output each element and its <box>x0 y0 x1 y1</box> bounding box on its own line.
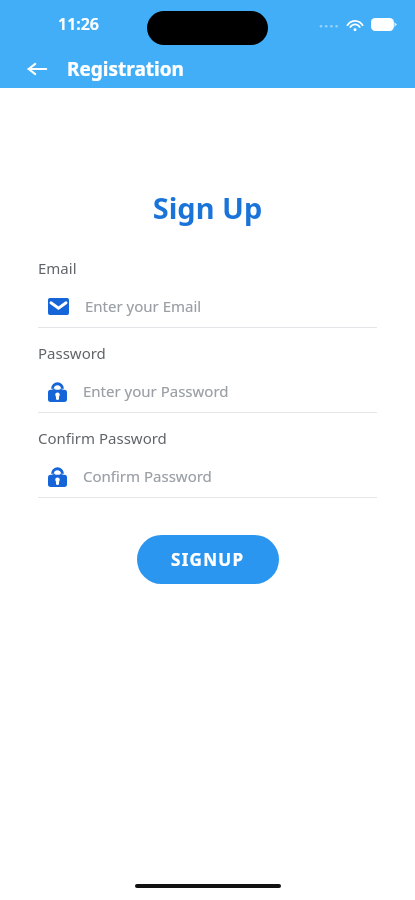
staticText: SIGNUP <box>171 548 245 571</box>
staticText: Confirm Password <box>83 466 212 486</box>
staticText: Sign Up <box>0 188 415 227</box>
staticText: Enter your Email <box>85 296 202 316</box>
staticText: Registration <box>67 56 184 82</box>
button[interactable]: Confirm Password <box>38 458 377 494</box>
button[interactable]: Enter your Email <box>38 288 377 324</box>
staticText: Confirm Password <box>38 428 167 448</box>
staticText: Enter your Password <box>83 381 229 401</box>
button[interactable]: Enter your Password <box>38 373 377 409</box>
button[interactable]: SIGNUP <box>137 535 279 584</box>
staticText: Password <box>38 343 106 363</box>
staticText: 11:26 <box>58 13 100 35</box>
button[interactable]: Back <box>22 54 52 84</box>
staticText: Email <box>38 258 77 278</box>
